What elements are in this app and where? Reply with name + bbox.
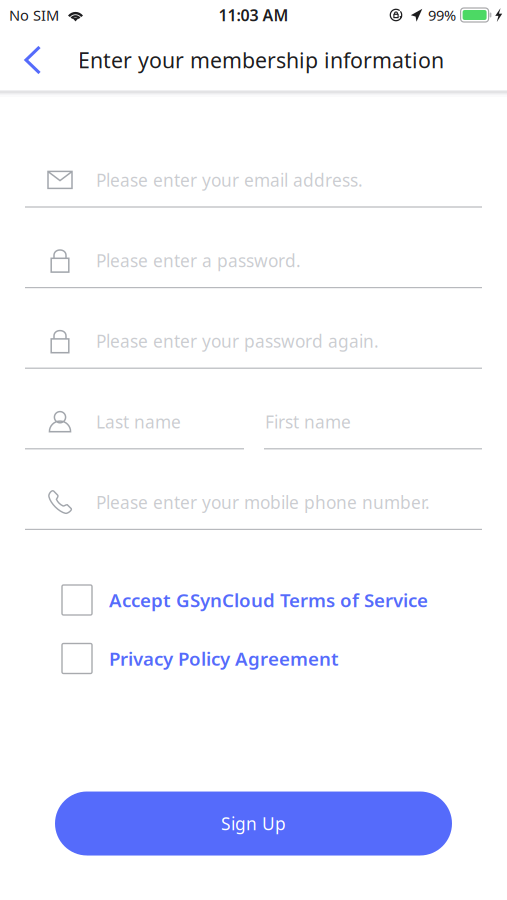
button[interactable]: Sign Up bbox=[55, 791, 452, 855]
button[interactable]: Accept GSynCloud Terms of Service bbox=[62, 585, 428, 615]
staticText: First name bbox=[265, 410, 351, 433]
staticText: Last name bbox=[96, 410, 181, 433]
staticText: Privacy Policy Agreement bbox=[109, 646, 339, 671]
staticText: Please enter your mobile phone number. bbox=[96, 491, 430, 514]
staticText: Please enter your email address. bbox=[96, 168, 363, 191]
button[interactable]: Privacy Policy Agreement bbox=[62, 643, 339, 673]
staticText: Accept GSynCloud Terms of Service bbox=[109, 588, 428, 612]
staticText: 99% bbox=[428, 5, 456, 25]
staticText: No SIM bbox=[9, 5, 59, 25]
button[interactable]: Back bbox=[0, 30, 66, 90]
staticText: Sign Up bbox=[221, 812, 286, 835]
staticText: Please enter a password. bbox=[96, 249, 301, 272]
staticText: 11:03 AM bbox=[218, 4, 288, 26]
staticText: Please enter your password again. bbox=[96, 330, 379, 353]
staticText: Enter your membership information bbox=[78, 46, 444, 74]
